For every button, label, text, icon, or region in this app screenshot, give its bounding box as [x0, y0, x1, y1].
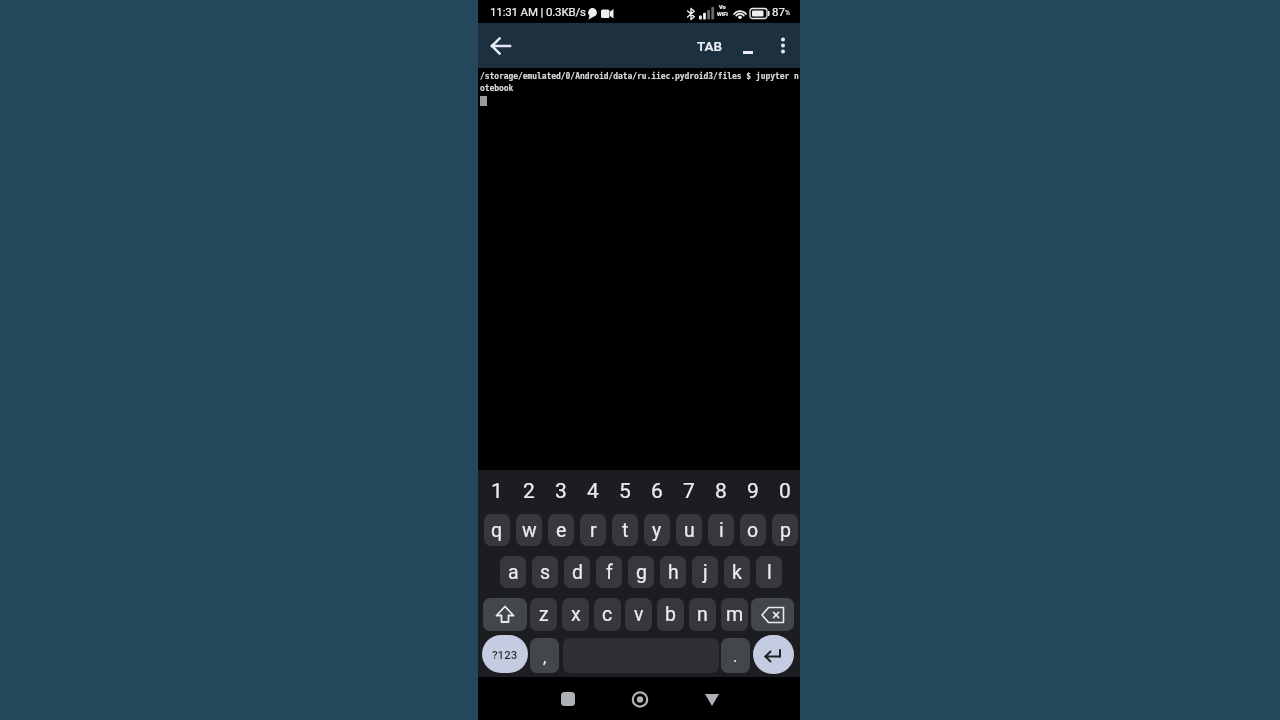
button[interactable]: y: [644, 514, 670, 546]
staticText: f: [606, 561, 613, 584]
button[interactable]: 0: [772, 474, 798, 508]
staticText: m: [726, 603, 744, 626]
staticText: 3: [555, 479, 567, 504]
staticText: b: [665, 603, 676, 626]
staticText: l: [767, 561, 772, 584]
button[interactable]: w: [516, 514, 542, 546]
staticText: v: [634, 603, 644, 626]
button[interactable]: g: [628, 556, 654, 588]
staticText: 0: [779, 479, 791, 504]
staticText: 4: [587, 479, 599, 504]
button[interactable]: o: [740, 514, 766, 546]
staticText: y: [652, 519, 662, 542]
button[interactable]: q: [484, 514, 510, 546]
staticText: e: [556, 519, 567, 542]
button[interactable]: ,: [530, 638, 559, 673]
staticText: /storage/emulated/0/Android/data/ru.iiec…: [480, 72, 799, 81]
staticText: 1: [491, 479, 503, 504]
button[interactable]: 8: [708, 474, 734, 508]
button[interactable]: 1: [484, 474, 510, 508]
staticText: 2: [523, 479, 535, 504]
staticText: x: [571, 603, 581, 626]
button[interactable]: c: [594, 598, 621, 631]
button[interactable]: 2: [516, 474, 542, 508]
button[interactable]: b: [657, 598, 684, 631]
button[interactable]: l: [756, 556, 782, 588]
staticText: ,: [543, 648, 547, 667]
staticText: 9: [747, 479, 759, 504]
button[interactable]: s: [532, 556, 558, 588]
button[interactable]: [771, 27, 795, 64]
button[interactable]: ?123: [482, 635, 528, 673]
staticText: otebook: [480, 84, 514, 93]
staticText: ?123: [492, 648, 518, 661]
staticText: j: [703, 561, 708, 584]
staticText: WiFi: [717, 11, 728, 17]
button[interactable]: 3: [548, 474, 574, 508]
staticText: s: [540, 561, 551, 584]
staticText: n: [697, 603, 708, 626]
button[interactable]: x: [562, 598, 589, 631]
button[interactable]: [485, 30, 517, 62]
staticText: 8: [715, 479, 727, 504]
button[interactable]: j: [692, 556, 718, 588]
button[interactable]: t: [612, 514, 638, 546]
button[interactable]: e: [548, 514, 574, 546]
staticText: 7: [683, 479, 695, 504]
staticText: TAB: [697, 38, 722, 54]
button[interactable]: d: [564, 556, 590, 588]
staticText: .: [733, 647, 738, 666]
button[interactable]: 6: [644, 474, 670, 508]
staticText: o: [747, 519, 759, 542]
staticText: a: [508, 561, 519, 584]
button[interactable]: k: [724, 556, 750, 588]
button[interactable]: [753, 635, 794, 674]
staticText: p: [780, 519, 791, 542]
staticText: c: [602, 603, 613, 626]
button[interactable]: m: [721, 598, 748, 631]
button[interactable]: [698, 685, 726, 713]
staticText: r: [590, 519, 597, 542]
button[interactable]: [626, 685, 654, 713]
staticText: 11:31 AM | 0.3KB/s: [490, 5, 586, 18]
staticText: q: [491, 519, 503, 542]
button[interactable]: .: [721, 638, 750, 673]
button[interactable]: TAB: [687, 23, 731, 68]
button[interactable]: u: [676, 514, 702, 546]
button[interactable]: [751, 598, 794, 631]
button[interactable]: r: [580, 514, 606, 546]
button[interactable]: p: [772, 514, 798, 546]
staticText: 6: [651, 479, 663, 504]
button[interactable]: 7: [676, 474, 702, 508]
staticText: i: [719, 519, 724, 542]
button[interactable]: f: [596, 556, 622, 588]
staticText: %: [785, 9, 790, 17]
button[interactable]: z: [530, 598, 557, 631]
button[interactable]: i: [708, 514, 734, 546]
button[interactable]: v: [625, 598, 652, 631]
staticText: u: [684, 519, 695, 542]
staticText: h: [668, 561, 679, 584]
staticText: d: [572, 561, 583, 584]
button[interactable]: 4: [580, 474, 606, 508]
button[interactable]: a: [500, 556, 526, 588]
button[interactable]: h: [660, 556, 686, 588]
staticText: k: [732, 561, 742, 584]
staticText: g: [636, 561, 647, 584]
button[interactable]: n: [689, 598, 716, 631]
button[interactable]: 5: [612, 474, 638, 508]
button[interactable]: [554, 685, 582, 713]
staticText: t: [622, 519, 629, 542]
button[interactable]: 9: [740, 474, 766, 508]
button[interactable]: [736, 23, 760, 68]
staticText: z: [539, 603, 549, 626]
staticText: w: [522, 519, 537, 542]
button[interactable]: [483, 598, 527, 631]
staticText: Vo: [719, 4, 726, 10]
staticText: 87: [772, 5, 785, 18]
staticText: 5: [619, 479, 631, 504]
